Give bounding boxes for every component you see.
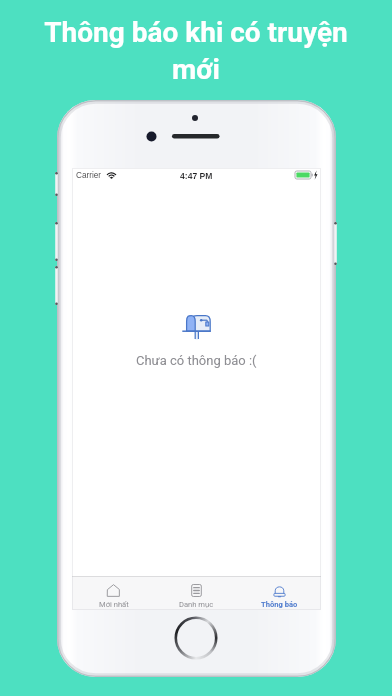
staticText: Carrier bbox=[76, 171, 102, 180]
button[interactable]: Thông báo bbox=[238, 577, 321, 609]
staticText: Thông báo khi có truyện mới bbox=[31, 16, 361, 86]
button[interactable]: Mới nhất bbox=[72, 577, 155, 609]
staticText: Chưa có thông báo :( bbox=[136, 353, 257, 368]
staticText: Mới nhất bbox=[99, 600, 129, 609]
button[interactable]: Danh mục bbox=[155, 577, 238, 609]
staticText: 4:47 PM bbox=[180, 171, 213, 181]
staticText: Thông báo bbox=[261, 600, 298, 609]
staticText: Danh mục bbox=[179, 600, 214, 609]
